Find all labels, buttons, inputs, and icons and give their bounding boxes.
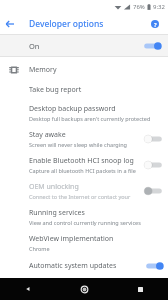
button[interactable]: Home bbox=[56, 278, 112, 300]
staticText: ? bbox=[154, 21, 157, 28]
button[interactable]: Back bbox=[0, 278, 56, 300]
staticText: Connect to the Internet or contact your … bbox=[29, 193, 144, 200]
button[interactable]: Back bbox=[0, 14, 20, 34]
staticText: Memory bbox=[29, 65, 57, 75]
button[interactable]: WebView implementation bbox=[0, 230, 168, 256]
staticText: Automatic system updates bbox=[29, 261, 117, 271]
staticText: On bbox=[29, 41, 40, 51]
button[interactable]: On bbox=[0, 35, 168, 56]
staticText: Take bug report bbox=[29, 85, 82, 95]
button[interactable]: Enable Bluetooth HCI snoop log bbox=[0, 152, 168, 178]
button[interactable]: Take bug report bbox=[0, 80, 168, 100]
staticText: Enable Bluetooth HCI snoop log bbox=[29, 156, 134, 166]
button[interactable]: Stay awake bbox=[0, 126, 168, 152]
button[interactable]: Help bbox=[145, 14, 165, 34]
button[interactable]: OEM unlocking bbox=[0, 178, 168, 204]
button[interactable]: Memory bbox=[0, 60, 168, 80]
staticText: Chrome bbox=[29, 245, 50, 252]
button[interactable]: Recent apps bbox=[112, 278, 168, 300]
staticText: Screen will never sleep while charging bbox=[29, 141, 127, 148]
staticText: Running services bbox=[29, 208, 85, 218]
button[interactable]: Desktop backup password bbox=[0, 100, 168, 126]
staticText: Desktop backup password bbox=[29, 104, 116, 114]
staticText: 9:32 bbox=[153, 3, 165, 11]
staticText: 76% bbox=[133, 3, 145, 11]
button[interactable]: Automatic system updates bbox=[0, 256, 168, 276]
staticText: Stay awake bbox=[29, 130, 66, 140]
staticText: Capture all bluetooth HCI packets in a f… bbox=[29, 167, 136, 174]
staticText: WebView implementation bbox=[29, 234, 114, 244]
button[interactable]: Running services bbox=[0, 204, 168, 230]
staticText: View and control currently running servi… bbox=[29, 219, 141, 226]
staticText: Desktop full backups aren't currently pr… bbox=[29, 115, 151, 122]
staticText: OEM unlocking bbox=[29, 182, 79, 192]
staticText: Developer options bbox=[29, 18, 104, 30]
